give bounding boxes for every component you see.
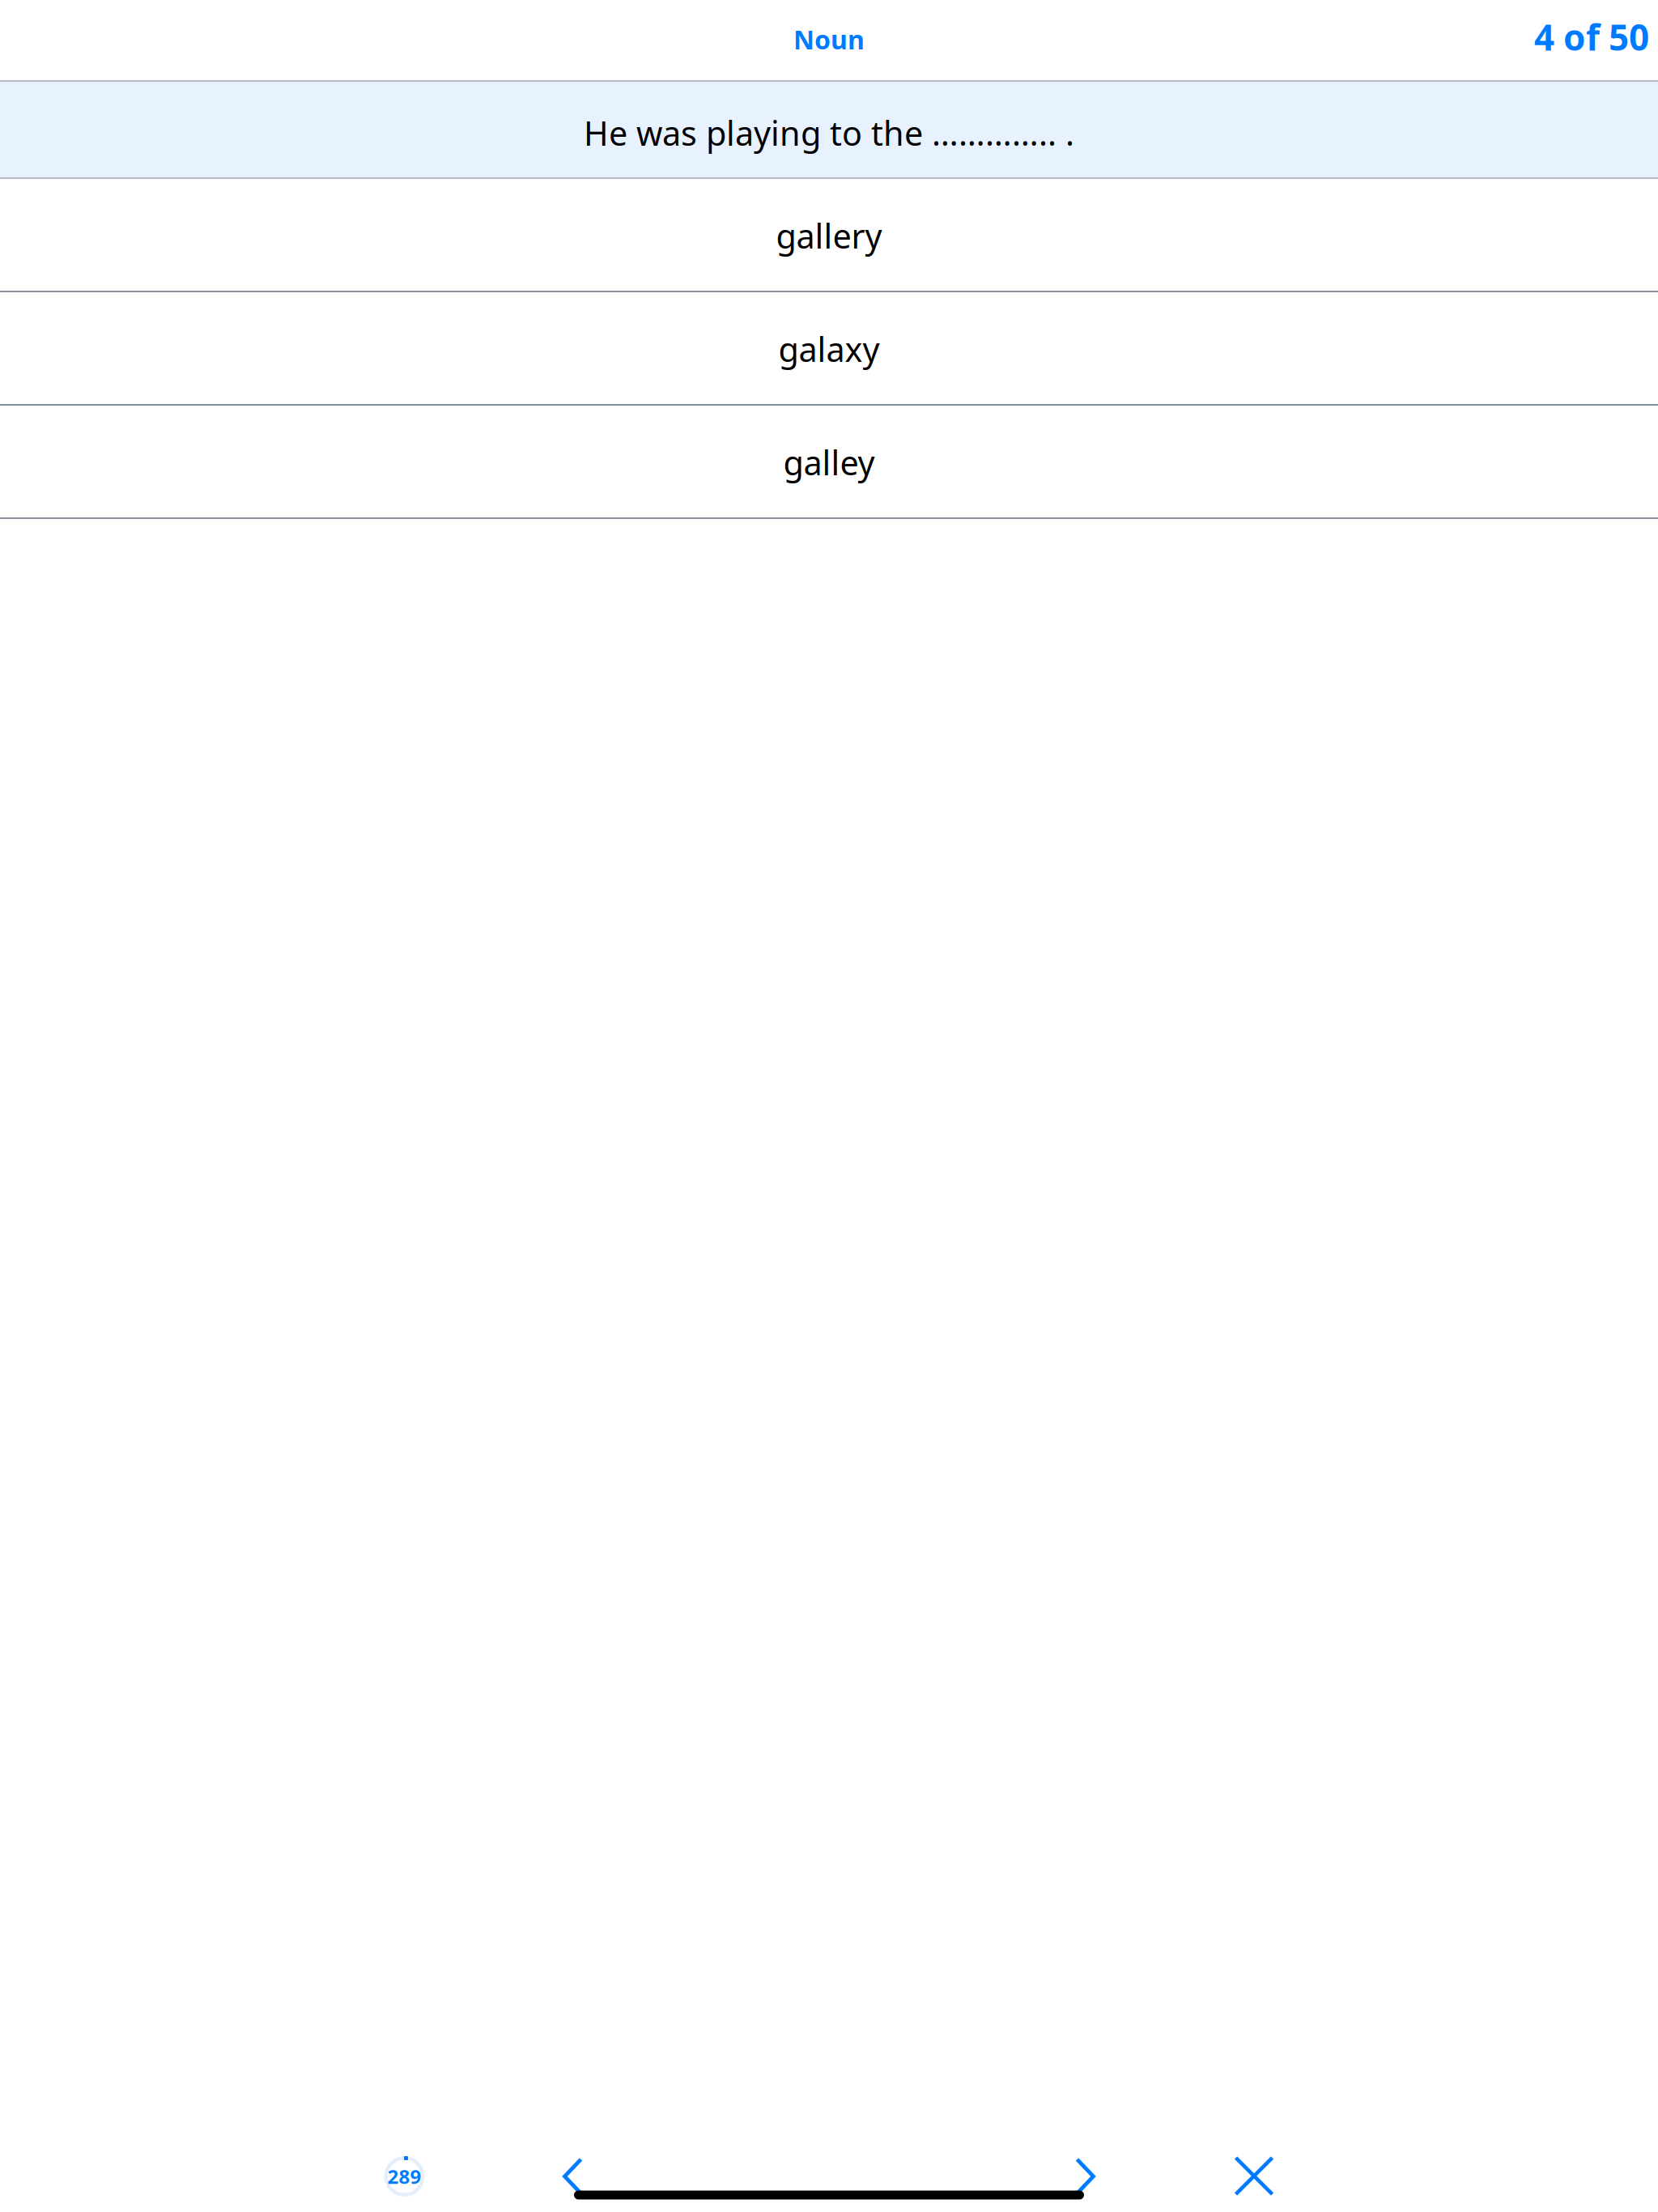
staticText: galaxy (778, 327, 880, 371)
button[interactable]: Next question (1077, 2159, 1093, 2193)
button[interactable]: Time remaining (378, 2150, 431, 2203)
staticText: gallery (776, 213, 882, 258)
staticText: Noun (793, 22, 865, 57)
button[interactable]: Noun (774, 0, 884, 82)
button[interactable]: Previous question (565, 2159, 581, 2193)
button[interactable]: gallery (0, 179, 1658, 292)
staticText: He was playing to the ………….. . (584, 111, 1074, 155)
button[interactable]: 4 of 50 (1515, 0, 1649, 82)
button[interactable]: galaxy (0, 292, 1658, 406)
button[interactable]: galley (0, 406, 1658, 519)
staticText: galley (783, 440, 875, 485)
button[interactable]: Close (1236, 2158, 1272, 2194)
staticText: 289 (387, 2164, 421, 2189)
staticText: 4 of 50 (1534, 13, 1649, 60)
